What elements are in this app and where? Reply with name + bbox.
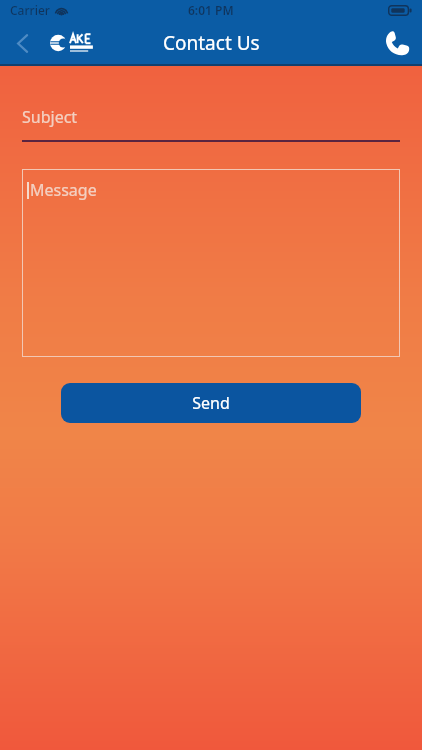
staticText: Contact Us [163, 30, 260, 56]
staticText: Send [192, 392, 230, 414]
button[interactable]: AKE Solar logo [50, 31, 96, 55]
staticText: Subject [22, 106, 78, 128]
button[interactable]: Subject [22, 106, 400, 142]
button[interactable]: Send [61, 383, 361, 423]
staticText: Carrier [10, 2, 50, 18]
staticText: 6:01 PM [188, 2, 234, 18]
button[interactable]: Back [0, 21, 44, 65]
staticText: Message [30, 179, 97, 201]
button[interactable]: Call [372, 20, 422, 66]
button[interactable]: Message [22, 169, 400, 357]
